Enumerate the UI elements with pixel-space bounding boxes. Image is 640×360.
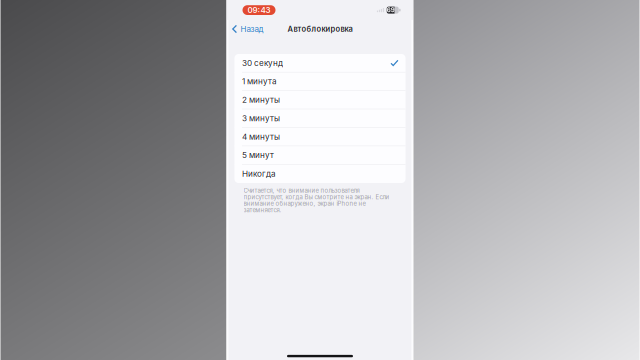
staticText: 4 минуты xyxy=(242,132,280,142)
staticText: 5 минут xyxy=(242,150,274,160)
button[interactable]: 2 минуты xyxy=(234,91,405,109)
staticText: 69 xyxy=(387,6,395,14)
staticText: 30 секунд xyxy=(242,58,283,68)
button[interactable]: 3 минуты xyxy=(234,109,405,128)
button[interactable]: Назад xyxy=(227,22,270,36)
staticText: Никогда xyxy=(242,169,276,179)
button[interactable]: 1 минута xyxy=(234,72,405,91)
staticText: Считается, что внимание пользователя при… xyxy=(243,187,389,214)
button[interactable]: Никогда xyxy=(234,165,405,183)
staticText: Автоблокировка xyxy=(287,24,352,34)
button[interactable]: 4 минуты xyxy=(234,128,405,146)
staticText: 1 минута xyxy=(242,76,277,86)
staticText: 3 минуты xyxy=(242,113,280,123)
staticText: Назад xyxy=(241,24,264,34)
button[interactable]: 5 минут xyxy=(234,146,405,164)
button[interactable]: 30 секунд xyxy=(234,54,405,72)
staticText: 2 минуты xyxy=(242,95,280,105)
staticText: 09:43 xyxy=(247,5,270,15)
